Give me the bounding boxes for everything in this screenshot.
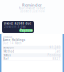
staticText: Updated just now xyxy=(19,9,44,13)
staticText: Acme Holdings xyxy=(3,38,25,42)
staticText: Pay now xyxy=(20,29,32,32)
staticText: Method xyxy=(3,50,14,53)
staticText: Card xyxy=(55,50,61,53)
button[interactable]: Method xyxy=(3,50,61,53)
staticText: Your invoice is due xyxy=(18,6,45,10)
staticText: Ref xyxy=(3,57,8,61)
button[interactable]: Status xyxy=(3,53,61,57)
staticText: Due 14 March xyxy=(3,41,22,45)
staticText: Closes in 3 days xyxy=(3,25,25,28)
staticText: Reminder xyxy=(22,2,42,8)
button[interactable]: Ref xyxy=(3,57,61,61)
staticText: Status xyxy=(3,53,10,57)
button[interactable]: Pay now xyxy=(19,29,33,32)
staticText: 8821 xyxy=(53,57,61,61)
staticText: Amount xyxy=(3,46,14,49)
staticText: Pending xyxy=(48,53,61,57)
button[interactable]: Amount xyxy=(3,46,61,50)
staticText: Invoice #2048 due xyxy=(3,22,31,25)
staticText: DETAILS xyxy=(3,35,12,39)
staticText: $1,240 xyxy=(50,46,61,49)
